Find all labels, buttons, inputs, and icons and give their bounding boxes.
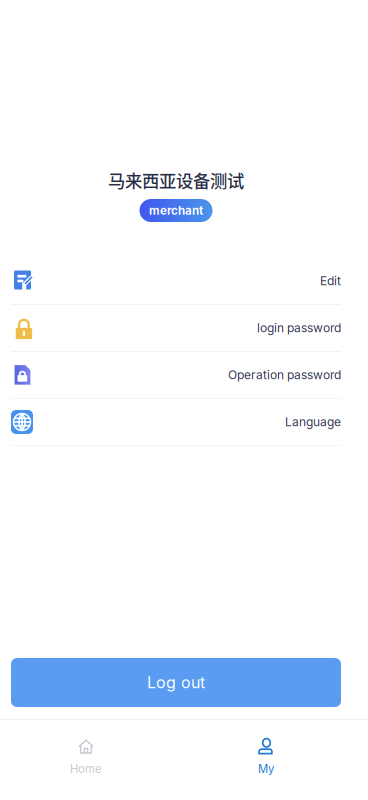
button[interactable]: login password bbox=[11, 305, 341, 352]
staticText: login password bbox=[257, 321, 341, 335]
staticText: Log out bbox=[147, 673, 205, 692]
button[interactable]: My bbox=[184, 719, 348, 779]
staticText: Operation password bbox=[228, 368, 341, 382]
staticText: My bbox=[258, 762, 274, 776]
staticText: merchant bbox=[149, 203, 203, 217]
staticText: Edit bbox=[320, 274, 341, 288]
button[interactable]: Home bbox=[4, 719, 168, 779]
staticText: 马来西亚设备测试 bbox=[108, 167, 244, 193]
button[interactable]: Log out bbox=[11, 658, 341, 707]
button[interactable]: Edit bbox=[11, 258, 341, 305]
button[interactable]: Operation password bbox=[11, 352, 341, 399]
staticText: Home bbox=[70, 762, 102, 776]
button[interactable]: Language bbox=[11, 399, 341, 446]
staticText: Language bbox=[285, 415, 341, 429]
